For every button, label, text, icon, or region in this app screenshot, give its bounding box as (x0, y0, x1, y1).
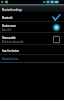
button[interactable]: Discoverable (0, 33, 64, 45)
button[interactable]: Device name (0, 22, 64, 33)
staticText: Device name (2, 23, 16, 28)
button[interactable]: Toggle (51, 34, 62, 45)
button[interactable]: Scan for devices (0, 45, 64, 55)
button[interactable]: Bluetooth (0, 12, 64, 22)
staticText: Bluetooth settings (2, 7, 22, 12)
staticText: Make device discoverable (2, 40, 24, 44)
staticText: Scan for devices (2, 48, 19, 53)
button[interactable]: Toggle (51, 22, 62, 33)
staticText: Discoverable (2, 35, 16, 40)
staticText: Nexus One (2, 28, 12, 32)
button[interactable]: Toggle (51, 12, 62, 22)
staticText: Bluetooth devices (2, 57, 18, 61)
staticText: Bluetooth (2, 15, 13, 20)
